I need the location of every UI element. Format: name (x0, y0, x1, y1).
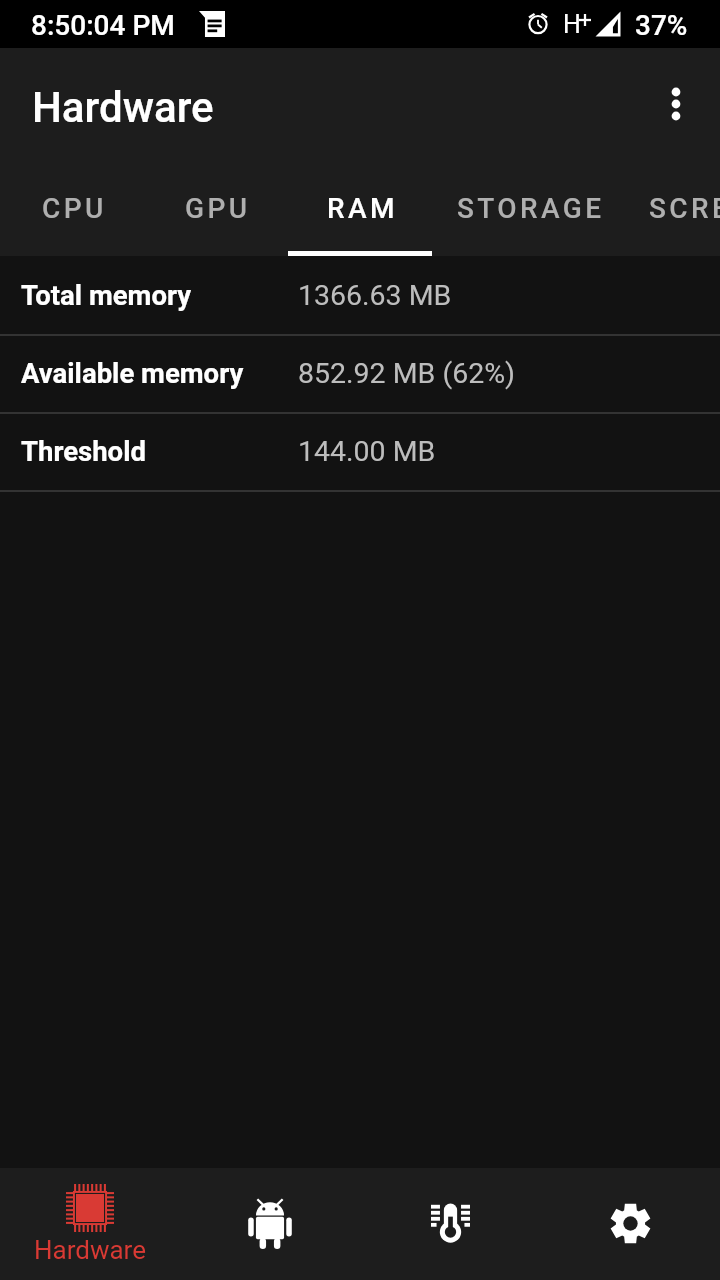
staticText: STORAGE (457, 192, 605, 225)
button[interactable]: RAM (288, 160, 432, 256)
staticText: Available memory (21, 357, 244, 389)
button[interactable]: Threshold (0, 412, 720, 490)
button[interactable]: Temperature (360, 1168, 540, 1280)
button[interactable]: CPU (0, 160, 144, 256)
button[interactable]: More options (636, 64, 716, 144)
button[interactable]: Hardware (0, 1168, 180, 1280)
staticText: 852.92 MB (62%) (298, 357, 515, 390)
button[interactable]: Settings (540, 1168, 720, 1280)
staticText: Hardware (32, 83, 214, 132)
staticText: 8:50:04 PM (31, 9, 175, 42)
button[interactable]: STORAGE (432, 160, 626, 256)
staticText: SCREEN (649, 192, 720, 225)
button[interactable]: System (180, 1168, 360, 1280)
staticText: 144.00 MB (298, 435, 436, 468)
staticText: Hardware (34, 1235, 146, 1265)
staticText: RAM (327, 192, 398, 225)
staticText: Threshold (21, 435, 146, 467)
staticText: Total memory (21, 279, 192, 311)
staticText: H (563, 10, 581, 39)
button[interactable]: Available memory (0, 334, 720, 412)
staticText: 1366.63 MB (298, 279, 452, 312)
button[interactable]: GPU (144, 160, 288, 256)
staticText: GPU (185, 192, 251, 225)
staticText: 37% (635, 9, 688, 42)
button[interactable]: Total memory (0, 256, 720, 334)
staticText: CPU (42, 192, 107, 225)
button[interactable]: SCREEN (626, 160, 720, 256)
